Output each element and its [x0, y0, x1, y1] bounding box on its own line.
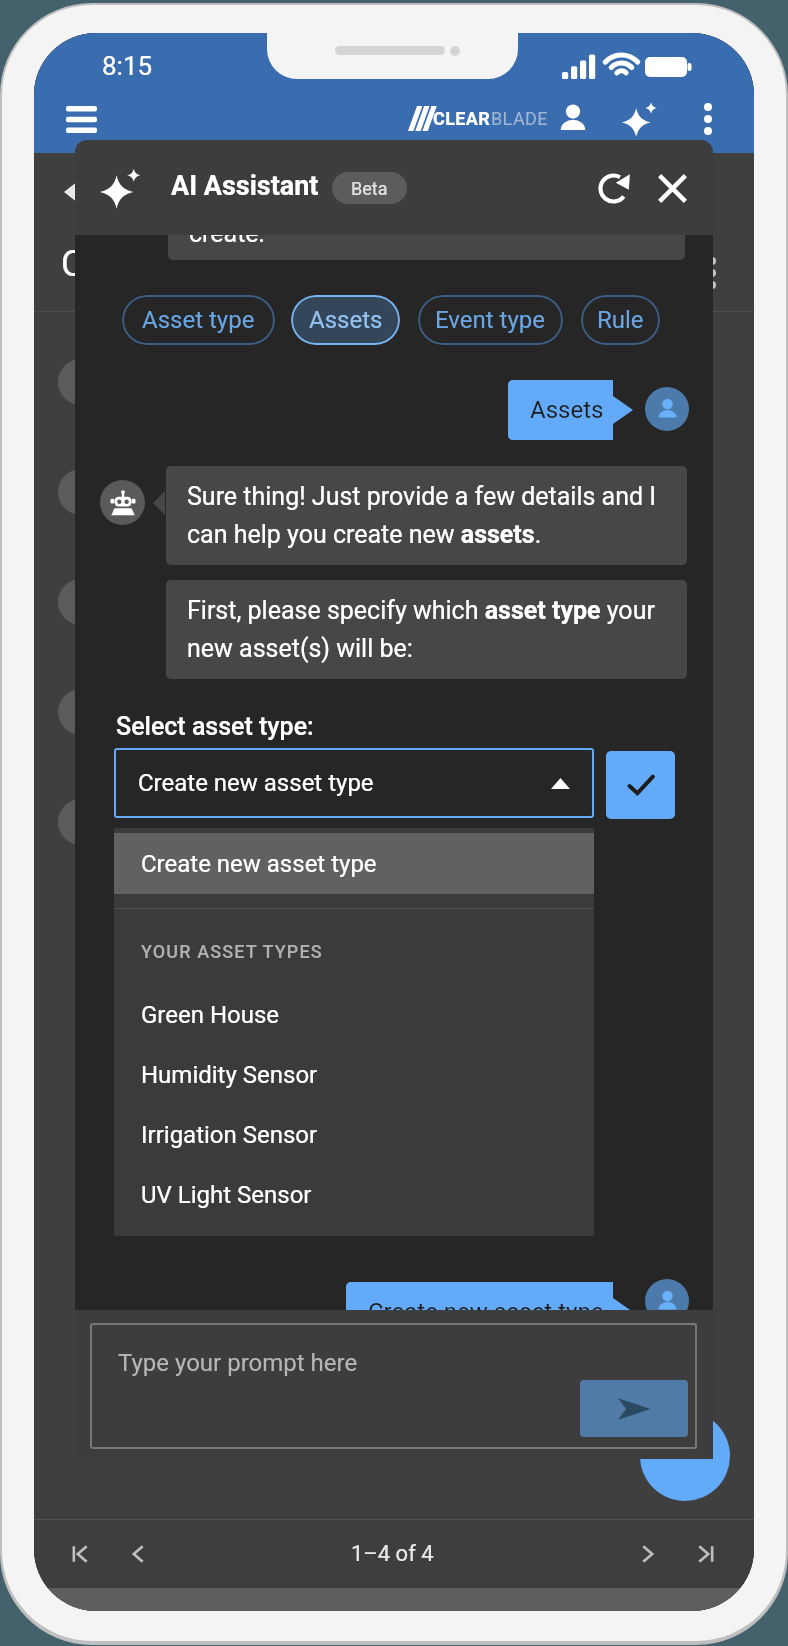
button[interactable]: Assets: [291, 295, 400, 345]
staticText: create:: [189, 235, 265, 248]
staticText: First, please specify which asset type y…: [187, 596, 669, 663]
button[interactable]: Add: [640, 1411, 730, 1501]
staticText: C: [61, 243, 85, 285]
staticText: YOUR ASSET TYPES: [141, 941, 323, 962]
staticText: Humidity Sensor: [141, 1061, 318, 1089]
button[interactable]: Next page: [628, 1532, 672, 1576]
button[interactable]: AI Assistant: [616, 95, 664, 143]
button[interactable]: Refresh: [588, 162, 640, 214]
button[interactable]: Send: [580, 1380, 688, 1437]
staticText: BLADE: [491, 108, 548, 129]
staticText: Create new asset type: [368, 1298, 604, 1312]
button[interactable]: First page: [58, 1532, 102, 1576]
staticText: 8:15: [102, 51, 153, 81]
button[interactable]: Menu: [56, 94, 107, 145]
staticText: Create new asset type: [138, 769, 374, 797]
staticText: Rule: [597, 306, 644, 334]
button[interactable]: Event type: [418, 295, 563, 345]
staticText: Type your prompt here: [118, 1349, 358, 1377]
staticText: Assets: [309, 306, 383, 334]
button[interactable]: More options: [684, 95, 732, 143]
button[interactable]: Humidity Sensor: [114, 1045, 594, 1105]
button[interactable]: Close: [646, 162, 698, 214]
button[interactable]: Previous page: [114, 1532, 158, 1576]
staticText: Select asset type:: [116, 712, 314, 741]
staticText: Irrigation Sensor: [141, 1121, 318, 1149]
button[interactable]: Green House: [114, 985, 594, 1045]
button[interactable]: Create new asset type: [114, 833, 594, 894]
staticText: Asset type: [142, 306, 255, 334]
staticText: Green House: [141, 1001, 280, 1029]
button[interactable]: Account: [549, 95, 597, 143]
staticText: 1–4 of 4: [351, 1541, 434, 1567]
button[interactable]: Create new asset type: [114, 748, 594, 818]
staticText: UV Light Sensor: [141, 1181, 312, 1209]
staticText: Sure thing! Just provide a few details a…: [187, 482, 669, 549]
button[interactable]: Last page: [684, 1532, 728, 1576]
button[interactable]: Rule: [581, 295, 660, 345]
staticText: Beta: [351, 178, 388, 199]
button[interactable]: Asset type: [122, 295, 275, 345]
staticText: AI Assistant: [171, 170, 319, 202]
staticText: CLEAR: [433, 108, 491, 129]
staticText: Assets: [530, 396, 604, 424]
staticText: Create new asset type: [141, 850, 377, 878]
button[interactable]: Confirm: [606, 751, 675, 819]
button[interactable]: Irrigation Sensor: [114, 1105, 594, 1165]
button[interactable]: UV Light Sensor: [114, 1165, 594, 1225]
staticText: Event type: [435, 306, 546, 334]
